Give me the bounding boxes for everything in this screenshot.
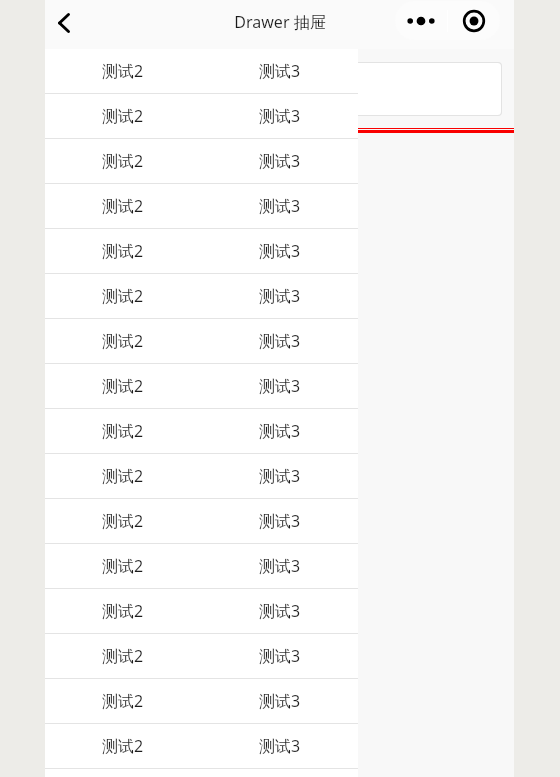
button[interactable]: 测试2: [45, 589, 358, 633]
staticText: 测试3: [259, 555, 301, 577]
staticText: 测试3: [259, 105, 301, 127]
button[interactable]: Close mini program: [448, 1, 500, 40]
button[interactable]: 测试2: [45, 679, 358, 723]
staticText: 测试3: [259, 510, 301, 532]
button[interactable]: 测试2: [45, 634, 358, 678]
staticText: 测试3: [259, 240, 301, 262]
button[interactable]: 测试2: [45, 94, 358, 138]
staticText: 测试2: [102, 195, 144, 217]
button[interactable]: 测试2: [45, 724, 358, 768]
button[interactable]: More options: [395, 1, 447, 40]
staticText: 测试2: [102, 105, 144, 127]
staticText: 测试3: [259, 735, 301, 757]
staticText: 测试3: [259, 195, 301, 217]
staticText: 测试3: [259, 285, 301, 307]
button[interactable]: 测试2: [45, 499, 358, 543]
staticText: 测试3: [259, 375, 301, 397]
staticText: 测试3: [259, 465, 301, 487]
button[interactable]: 测试2: [45, 319, 358, 363]
button[interactable]: 测试2: [45, 274, 358, 318]
button[interactable]: 测试2: [45, 364, 358, 408]
staticText: 测试3: [259, 150, 301, 172]
staticText: 测试2: [102, 60, 144, 82]
staticText: 测试2: [102, 285, 144, 307]
button[interactable]: 测试2: [45, 454, 358, 498]
staticText: 测试2: [102, 690, 144, 712]
staticText: 测试2: [102, 555, 144, 577]
staticText: 测试2: [102, 375, 144, 397]
staticText: 测试3: [259, 690, 301, 712]
staticText: 测试3: [259, 645, 301, 667]
staticText: 测试2: [102, 420, 144, 442]
staticText: 测试2: [102, 600, 144, 622]
staticText: Drawer 抽屉: [234, 11, 326, 33]
staticText: 测试3: [259, 330, 301, 352]
button[interactable]: 测试2: [45, 139, 358, 183]
staticText: 测试2: [102, 240, 144, 262]
button[interactable]: 测试2: [45, 409, 358, 453]
button[interactable]: 测试2: [45, 544, 358, 588]
staticText: 测试2: [102, 645, 144, 667]
button[interactable]: 测试2: [45, 184, 358, 228]
staticText: 测试3: [259, 420, 301, 442]
staticText: 测试2: [102, 510, 144, 532]
staticText: 测试2: [102, 465, 144, 487]
staticText: 测试2: [102, 150, 144, 172]
button[interactable]: Back: [42, 1, 86, 45]
button[interactable]: 测试2: [45, 229, 358, 273]
staticText: 测试2: [102, 330, 144, 352]
button[interactable]: 测试2: [45, 49, 358, 93]
staticText: 测试2: [102, 735, 144, 757]
button[interactable]: Text field: [59, 63, 501, 115]
staticText: 测试3: [259, 600, 301, 622]
staticText: 测试3: [259, 60, 301, 82]
